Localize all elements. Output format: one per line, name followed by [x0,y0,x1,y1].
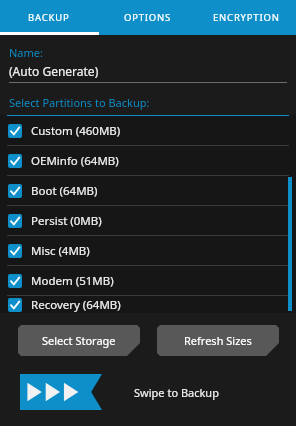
button[interactable]: Select Storage [18,325,140,356]
button[interactable]: Persist (0MB) [0,206,296,235]
button[interactable]: BACKUP [0,0,98,35]
staticText: OPTIONS [124,11,172,24]
staticText: Select Storage [42,333,116,348]
button[interactable]: Misc (4MB) [0,236,296,265]
button[interactable]: (Auto Generate) [9,63,287,83]
staticText: Name: [9,45,43,60]
staticText: Refresh Sizes [184,333,252,348]
staticText: Boot (64MB) [31,183,98,199]
button[interactable]: Recovery (64MB) [0,296,296,313]
button[interactable]: Boot (64MB) [0,176,296,205]
button[interactable]: ENCRYPTION [197,0,296,35]
staticText: Recovery (64MB) [31,297,121,313]
button[interactable]: Custom (460MB) [0,116,296,145]
staticText: Persist (0MB) [31,213,102,229]
staticText: Misc (4MB) [31,243,90,259]
staticText: Modem (51MB) [31,273,114,289]
staticText: BACKUP [28,11,70,24]
staticText: Custom (460MB) [31,123,121,139]
staticText: Select Partitions to Backup: [9,95,150,110]
staticText: ENCRYPTION [213,11,280,24]
button[interactable]: Modem (51MB) [0,266,296,295]
staticText: (Auto Generate) [9,63,99,79]
button[interactable]: OPTIONS [98,0,197,35]
button[interactable]: OEMinfo (64MB) [0,146,296,175]
staticText: Swipe to Backup [134,385,219,400]
button[interactable]: Refresh Sizes [157,325,279,356]
button[interactable]: Swipe to Backup [20,374,102,410]
staticText: OEMinfo (64MB) [31,153,119,169]
